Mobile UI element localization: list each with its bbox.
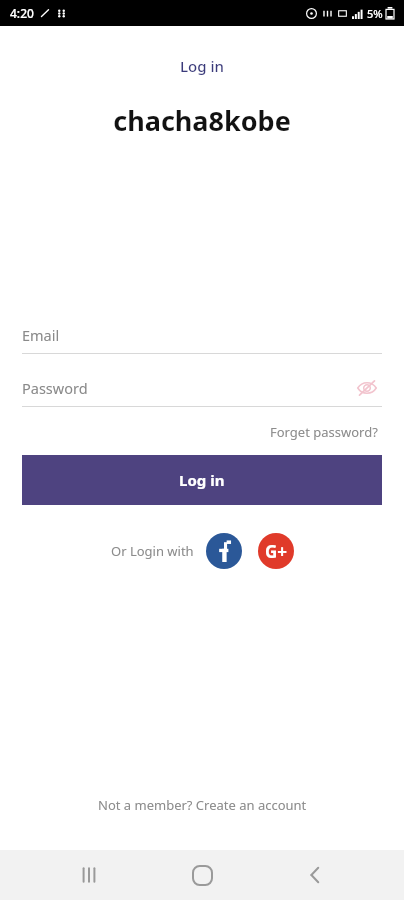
staticText: Email <box>22 325 60 345</box>
staticText: Log in <box>179 470 225 490</box>
staticText: Password <box>22 378 352 398</box>
button[interactable]: Login with Facebook <box>206 533 242 569</box>
button[interactable]: Show password <box>352 373 382 403</box>
button[interactable]: Forget password? <box>266 419 382 445</box>
button[interactable]: Email <box>22 317 382 353</box>
staticText: Not a member? Create an account <box>98 796 307 814</box>
button[interactable]: Back <box>291 851 339 899</box>
button[interactable]: Not a member? Create an account <box>0 790 404 820</box>
staticText: Log in <box>180 56 224 76</box>
button[interactable]: Password <box>22 370 382 406</box>
button[interactable]: Login with Google <box>258 533 294 569</box>
button[interactable]: Log in <box>22 455 382 505</box>
staticText: 5% <box>367 6 383 21</box>
staticText: Or Login with <box>111 542 194 560</box>
staticText: Forget password? <box>270 423 378 441</box>
staticText: chacha8kobe <box>113 102 291 139</box>
staticText: G+ <box>265 540 288 563</box>
staticText: 4:20 <box>10 5 34 21</box>
button[interactable]: Home <box>178 851 226 899</box>
button[interactable]: Recent apps <box>65 851 113 899</box>
